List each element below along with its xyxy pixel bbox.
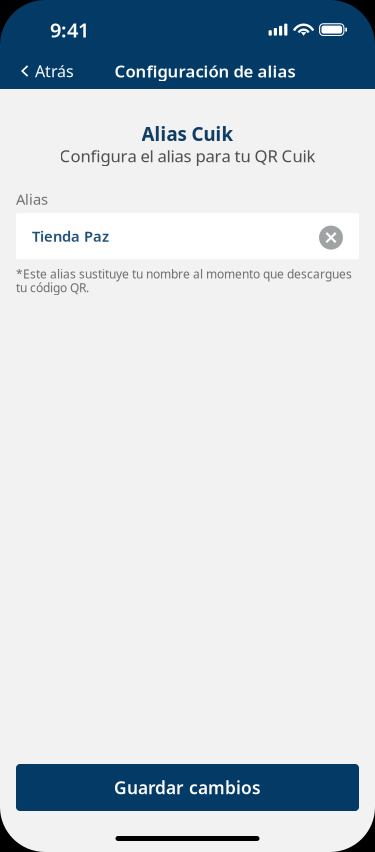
staticText: Guardar cambios <box>114 776 261 799</box>
staticText: Alias Cuik <box>141 121 233 146</box>
button[interactable]: Guardar cambios <box>16 764 359 811</box>
staticText: Tienda Paz <box>32 226 109 246</box>
staticText: *Este alias sustituye tu nombre al momen… <box>16 267 352 295</box>
button[interactable]: Borrar alias <box>319 224 343 248</box>
staticText: Alias <box>16 189 48 209</box>
button[interactable]: Atrás <box>0 53 84 89</box>
staticText: Atrás <box>35 60 74 82</box>
staticText: Configuración de alias <box>114 60 295 82</box>
staticText: 9:41 <box>50 16 89 43</box>
staticText: Configura el alias para tu QR Cuik <box>59 144 315 167</box>
